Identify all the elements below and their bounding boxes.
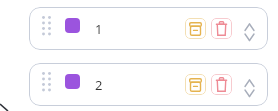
button[interactable]: Colour swatch (65, 74, 80, 89)
staticText: 2 (95, 76, 103, 94)
button[interactable]: Reorder (244, 11, 256, 46)
button[interactable]: Colour swatch (65, 18, 80, 33)
button[interactable]: Colour swatch (29, 7, 268, 50)
button[interactable]: Delete (211, 74, 232, 95)
staticText: 1 (95, 20, 103, 38)
button[interactable]: Colour swatch (29, 63, 268, 106)
button[interactable]: Archive (185, 18, 206, 39)
button[interactable]: Archive (185, 74, 206, 95)
button[interactable]: Delete (211, 18, 232, 39)
button[interactable]: Reorder (244, 67, 256, 102)
